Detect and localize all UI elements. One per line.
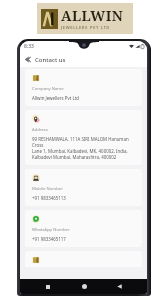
staticText: Kalbadevi Mumbai, Maharashtra, 400002 — [32, 154, 117, 160]
staticText: Address — [32, 127, 48, 133]
staticText: +91 9833465113 — [32, 195, 66, 201]
button[interactable]: Home — [76, 279, 92, 294]
staticText: +91 9833465117 — [32, 236, 66, 242]
button[interactable]: Mobile Number — [25, 169, 142, 206]
staticText: Mobile Number — [32, 186, 63, 192]
staticText: ALLWIN — [61, 6, 124, 25]
staticText: 8:33 — [24, 43, 34, 50]
button[interactable]: Back — [20, 52, 35, 67]
button[interactable]: WhatsApp Number — [25, 210, 142, 247]
staticText: Company Name — [32, 86, 64, 92]
button[interactable]: Back — [111, 279, 127, 294]
staticText: 99 RESHAMWALA, 111A SIRI MALOM Hanuman C… — [32, 136, 136, 148]
staticText: Contact us — [35, 56, 66, 64]
button[interactable] — [25, 251, 142, 267]
button[interactable]: Allwin Jewellers logo — [37, 3, 133, 34]
staticText: Lane 1, Mumbai, Kalbadevi, MK, 400002, I… — [32, 148, 128, 154]
button[interactable]: Recents — [40, 279, 56, 294]
staticText: WhatsApp Number — [32, 227, 70, 233]
staticText: Allwin Jewellers Pvt Ltd — [32, 95, 80, 101]
button[interactable]: Company Name — [25, 69, 142, 106]
button[interactable]: Address — [25, 110, 142, 165]
staticText: JEWELLERS PVT LTD — [61, 25, 111, 31]
